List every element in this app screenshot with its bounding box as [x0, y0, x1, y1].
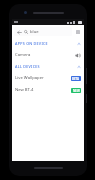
staticText: Live Wallpaper [15, 75, 44, 81]
button[interactable]: APPS ON DEVICE [12, 38, 84, 49]
button[interactable]: Camera [12, 49, 84, 61]
button[interactable]: Back [16, 29, 22, 35]
button[interactable]: NEW [71, 88, 81, 93]
button[interactable]: ALL DEVICES [12, 61, 84, 72]
button[interactable]: Sound [74, 52, 81, 59]
button[interactable]: New BT-4 [12, 84, 84, 96]
staticText: Camera [15, 52, 31, 58]
staticText: ALL DEVICES [15, 64, 40, 69]
button[interactable]: Back [14, 27, 72, 36]
staticText: New BT-4 [15, 87, 34, 93]
staticText: APPS ON DEVICE [15, 41, 48, 46]
button[interactable]: Live Wallpaper [12, 72, 84, 84]
staticText: blue [30, 29, 39, 35]
staticText: BETA [72, 77, 80, 81]
button[interactable]: BETA [71, 76, 81, 81]
button[interactable]: More options [74, 28, 82, 36]
staticText: NEW [73, 89, 80, 93]
